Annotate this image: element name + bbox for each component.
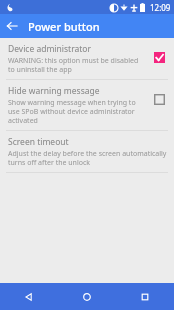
staticText: Hide warning message [8,85,100,97]
button[interactable]: Checked [150,48,168,66]
staticText: Screen timeout [8,136,69,148]
button[interactable]: Home [58,283,116,310]
button[interactable]: Unchecked [150,90,168,108]
staticText: Show warning message when trying to use … [8,98,146,125]
button[interactable]: Hide warning message [0,80,174,130]
button[interactable]: Back [0,283,58,310]
staticText: Power button [28,19,100,34]
button[interactable]: Screen timeout [0,131,174,172]
staticText: 12:09 [150,2,171,13]
button[interactable]: Device administrator [0,38,174,79]
staticText: Device administrator [8,43,91,55]
staticText: WARNING: this option must be disabled to… [8,56,146,74]
button[interactable]: Back [0,14,24,38]
staticText: Adjust the delay before the screen autom… [8,149,168,167]
button[interactable]: Recents [116,283,174,310]
